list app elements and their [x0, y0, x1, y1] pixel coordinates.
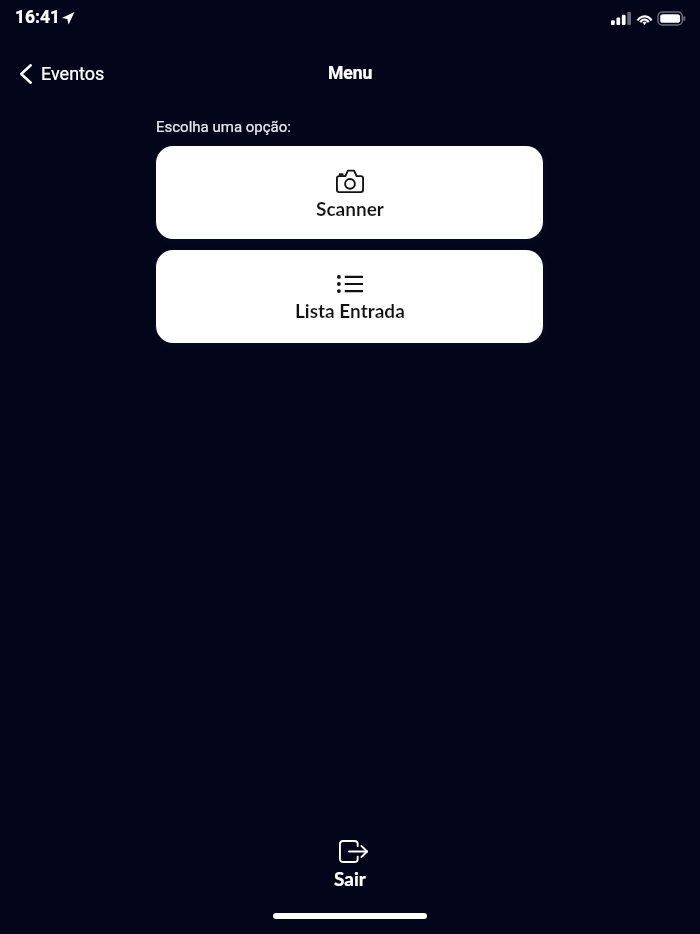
staticText: 16:41: [15, 7, 61, 28]
other: Voltar: [20, 64, 32, 84]
button[interactable]: Voltar: [0, 58, 115, 89]
staticText: Escolha uma opção:: [156, 118, 291, 136]
staticText: Lista Entrada: [295, 299, 405, 322]
staticText: Scanner: [316, 197, 384, 220]
staticText: Sair: [334, 867, 366, 890]
button[interactable]: Lista Entrada: [156, 250, 543, 343]
button[interactable]: Sair: [308, 832, 392, 898]
staticText: Eventos: [41, 63, 105, 84]
button[interactable]: Scanner: [156, 146, 543, 239]
staticText: Menu: [328, 63, 373, 84]
other: Sair: [339, 840, 368, 863]
